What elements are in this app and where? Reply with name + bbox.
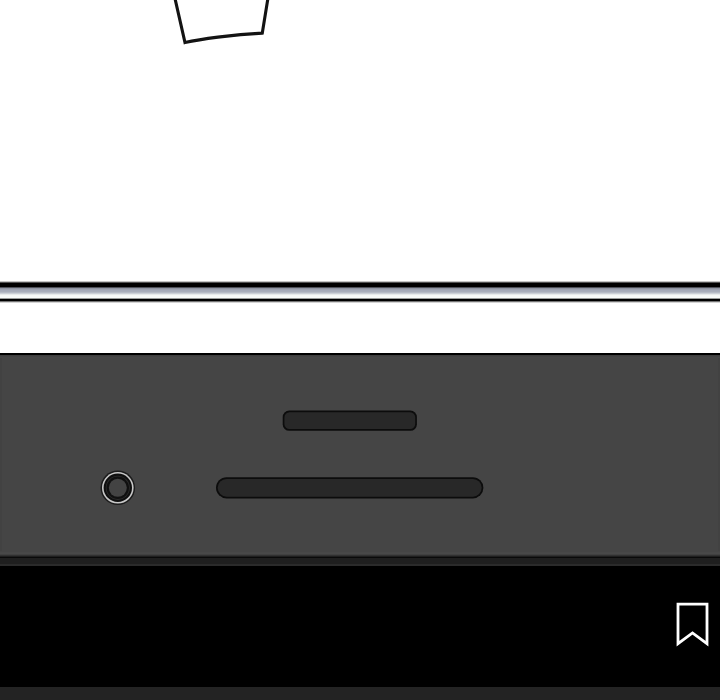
button[interactable]: Comic page, tap to show controls (0, 0, 720, 700)
button[interactable]: Bookmark this episode (669, 596, 717, 644)
